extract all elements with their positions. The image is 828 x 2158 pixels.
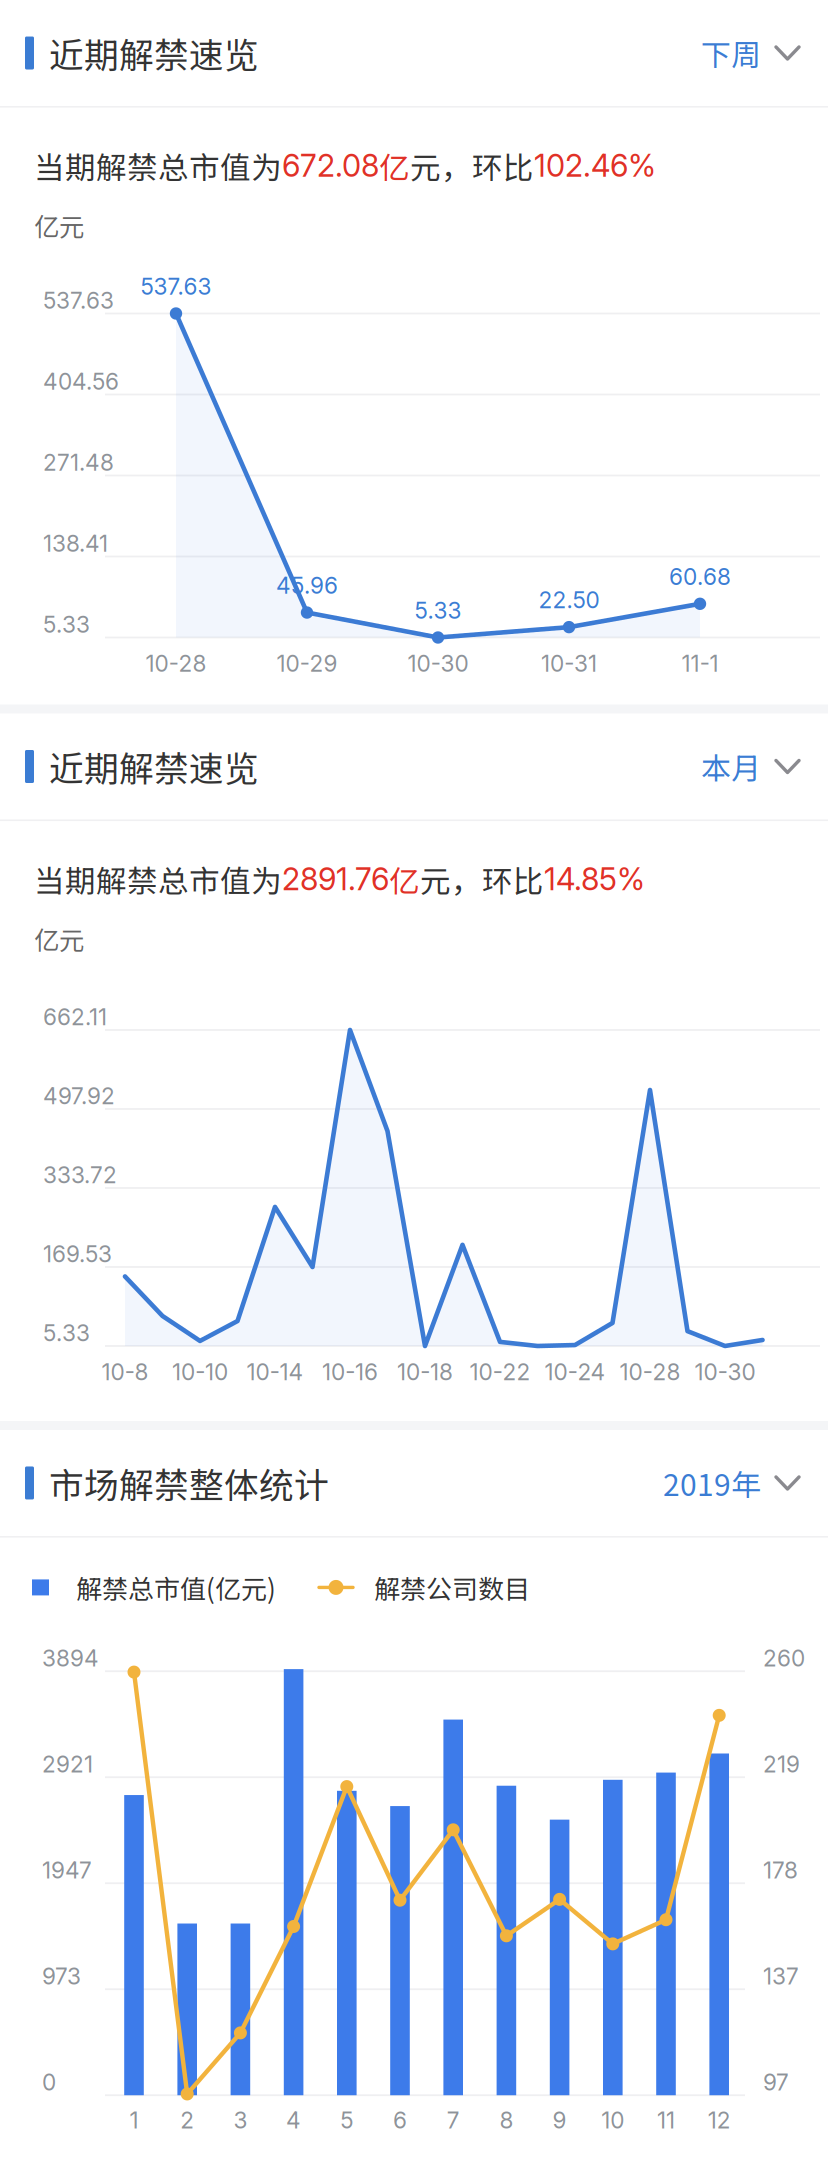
button[interactable]: 解禁总市值(亿元): [32, 1555, 276, 1620]
staticText: 60.68: [669, 563, 731, 590]
staticText: 178: [763, 1856, 798, 1884]
staticText: 4: [286, 2106, 301, 2134]
staticText: 138.41: [43, 530, 108, 557]
staticText: 5.33: [414, 597, 461, 624]
staticText: 下周: [701, 31, 761, 75]
staticText: 当期解禁总市值为: [34, 857, 282, 901]
staticText: 219: [763, 1750, 800, 1778]
staticText: 环比: [472, 144, 534, 188]
staticText: 5.33: [43, 611, 90, 638]
staticText: 271.48: [43, 449, 114, 476]
staticText: 5: [340, 2106, 353, 2134]
staticText: 8: [499, 2106, 513, 2134]
staticText: 10-28: [619, 1358, 680, 1386]
staticText: 解禁总市值(亿元): [76, 1569, 276, 1606]
staticText: 97: [763, 2068, 789, 2096]
staticText: 10-10: [172, 1358, 228, 1386]
button[interactable]: 本月: [701, 725, 801, 808]
staticText: 1947: [42, 1856, 92, 1884]
staticText: 3: [233, 2106, 247, 2134]
staticText: 22.50: [538, 586, 599, 614]
staticText: 元，: [410, 144, 472, 188]
staticText: 12: [708, 2106, 731, 2134]
staticText: 537.63: [140, 273, 211, 300]
staticText: 14.85%: [544, 861, 645, 898]
staticText: 11: [657, 2106, 675, 2134]
staticText: 662.11: [43, 1003, 107, 1031]
staticText: 10: [601, 2106, 624, 2134]
staticText: 333.72: [43, 1161, 117, 1189]
staticText: 102.46%: [534, 147, 656, 184]
staticText: 10-30: [407, 650, 468, 677]
staticText: 11-1: [681, 650, 718, 677]
staticText: 当期解禁总市值为: [34, 144, 282, 188]
staticText: 404.56: [43, 368, 119, 395]
staticText: 元，: [420, 857, 482, 901]
staticText: 环比: [482, 857, 544, 901]
staticText: 10-30: [694, 1358, 755, 1386]
staticText: 169.53: [43, 1240, 112, 1268]
staticText: 市场解禁整体统计: [49, 1458, 329, 1508]
staticText: 10-31: [541, 650, 597, 677]
staticText: 10-28: [145, 650, 206, 677]
staticText: 亿元: [34, 920, 84, 957]
staticText: 亿元: [34, 207, 84, 243]
staticText: 3894: [42, 1644, 99, 1672]
button[interactable]: 下周: [701, 11, 801, 95]
button[interactable]: 2019年: [663, 1441, 801, 1525]
staticText: 45.96: [276, 572, 338, 599]
staticText: 6: [393, 2106, 407, 2134]
staticText: 10-29: [276, 650, 337, 677]
staticText: 0: [42, 2068, 56, 2096]
staticText: 2: [180, 2106, 194, 2134]
staticText: 亿: [389, 857, 420, 901]
staticText: 10-16: [322, 1358, 378, 1386]
staticText: 260: [763, 1644, 805, 1672]
staticText: 近期解禁速览: [49, 28, 259, 78]
staticText: 10-8: [101, 1358, 148, 1386]
staticText: 解禁公司数目: [374, 1569, 530, 1606]
staticText: 7: [447, 2106, 460, 2134]
staticText: 本月: [701, 745, 761, 788]
staticText: 497.92: [43, 1082, 115, 1110]
button[interactable]: 解禁公司数目: [319, 1555, 530, 1620]
staticText: 2891.76: [282, 861, 389, 898]
staticText: 近期解禁速览: [49, 741, 259, 792]
staticText: 5.33: [43, 1319, 90, 1347]
staticText: 亿: [379, 144, 410, 188]
staticText: 137: [763, 1962, 799, 1990]
staticText: 537.63: [43, 287, 114, 314]
staticText: 10-14: [246, 1358, 303, 1386]
staticText: 1: [129, 2106, 138, 2134]
staticText: 10-22: [469, 1358, 530, 1386]
staticText: 2921: [42, 1750, 93, 1778]
staticText: 10-24: [544, 1358, 605, 1386]
staticText: 672.08: [282, 147, 379, 184]
staticText: 2019年: [663, 1461, 761, 1505]
staticText: 10-18: [397, 1358, 453, 1386]
staticText: 973: [42, 1962, 81, 1990]
staticText: 9: [553, 2106, 567, 2134]
